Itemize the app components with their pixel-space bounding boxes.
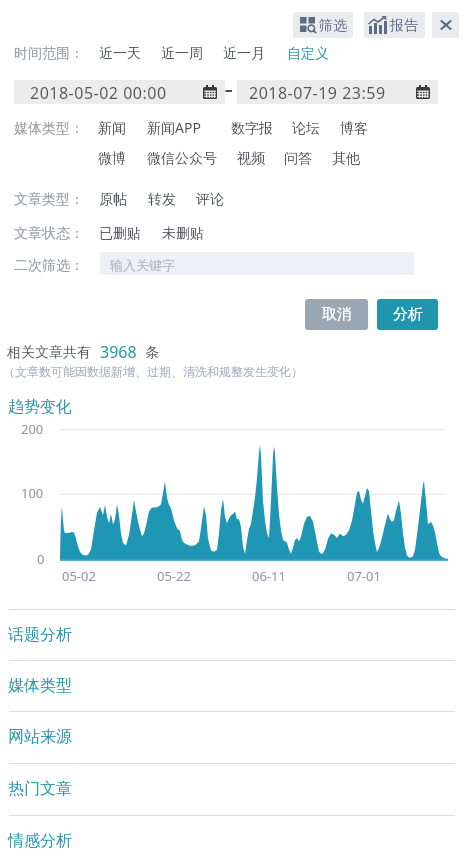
button[interactable]: 博客 [340, 120, 368, 138]
staticText: 200 [21, 420, 44, 438]
staticText: 取消 [322, 305, 352, 324]
button[interactable]: 评论 [196, 191, 224, 209]
button[interactable]: 近一月 [223, 45, 265, 63]
button[interactable]: 取消 [305, 299, 368, 330]
button[interactable]: 论坛 [292, 120, 320, 138]
staticText: 文章状态： [14, 225, 84, 243]
button[interactable]: 未删贴 [162, 225, 204, 243]
button[interactable] [432, 12, 459, 38]
button[interactable]: 近一天 [99, 45, 141, 63]
staticText: 05-02 [62, 567, 96, 585]
button[interactable]: 已删贴 [99, 225, 141, 243]
button[interactable]: 2018-07-19 23:59 [237, 80, 438, 104]
button[interactable]: 自定义 [287, 45, 329, 63]
staticText: 热门文章 [8, 779, 72, 799]
button[interactable]: 输入关键字 [100, 252, 414, 275]
button[interactable]: 近一周 [161, 45, 203, 63]
button[interactable]: 网站来源 [0, 727, 464, 757]
staticText: 时间范围： [14, 45, 84, 63]
button[interactable]: 新闻APP [147, 118, 201, 137]
button[interactable]: 转发 [148, 191, 176, 209]
staticText: 05-22 [157, 567, 191, 585]
button[interactable]: 其他 [332, 150, 360, 168]
button[interactable]: 微信公众号 [147, 150, 217, 168]
staticText: 筛选 [319, 17, 347, 35]
staticText: 报告 [390, 17, 418, 35]
staticText: 趋势变化 [8, 397, 72, 417]
button[interactable]: 媒体类型 [0, 676, 464, 706]
button[interactable]: 新闻 [98, 120, 126, 138]
staticText: 情感分析 [8, 831, 72, 851]
button[interactable]: 2018-05-02 00:00 [14, 80, 225, 104]
staticText: 条 [145, 344, 159, 362]
button[interactable]: 视频 [237, 150, 265, 168]
staticText: 3968 [100, 341, 137, 363]
button[interactable]: 分析 [377, 299, 438, 330]
staticText: 媒体类型： [14, 120, 84, 138]
staticText: 07-01 [347, 567, 381, 585]
staticText: 二次筛选： [14, 257, 84, 275]
staticText: 2018-05-02 00:00 [30, 82, 167, 104]
staticText: 话题分析 [8, 625, 72, 645]
button[interactable]: 筛选 [293, 12, 353, 38]
staticText: 媒体类型 [8, 676, 72, 696]
staticText: （文章数可能因数据新增、过期、清洗和规整发生变化） [3, 364, 303, 379]
button[interactable]: 微博 [98, 150, 126, 168]
staticText: 网站来源 [8, 727, 72, 747]
staticText: 相关文章共有 [7, 344, 91, 362]
staticText: 0 [37, 550, 45, 568]
staticText: 分析 [393, 305, 423, 324]
button[interactable]: 问答 [284, 150, 312, 168]
button[interactable]: 报告 [364, 12, 425, 38]
button[interactable]: 热门文章 [0, 779, 464, 809]
staticText: 2018-07-19 23:59 [249, 82, 386, 104]
button[interactable]: 情感分析 [0, 831, 464, 861]
button[interactable]: 数字报 [231, 120, 273, 138]
staticText: 文章类型： [14, 191, 84, 209]
staticText: 输入关键字 [110, 257, 175, 273]
staticText: 100 [21, 484, 44, 502]
staticText: 06-11 [252, 567, 286, 585]
button[interactable]: 原帖 [99, 191, 127, 209]
button[interactable]: 话题分析 [0, 625, 464, 655]
